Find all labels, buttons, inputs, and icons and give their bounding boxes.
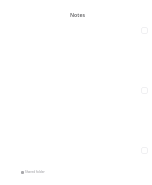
button[interactable]: Note options xyxy=(4,124,148,176)
button[interactable]: Note options xyxy=(4,4,148,56)
button[interactable]: Shared folder xyxy=(20,169,46,175)
button[interactable]: Note options xyxy=(141,87,148,94)
staticText: Shared folder xyxy=(25,170,45,174)
staticText: Notes xyxy=(70,11,86,18)
button[interactable]: Note options xyxy=(141,27,148,34)
button[interactable]: Note options xyxy=(141,147,148,154)
